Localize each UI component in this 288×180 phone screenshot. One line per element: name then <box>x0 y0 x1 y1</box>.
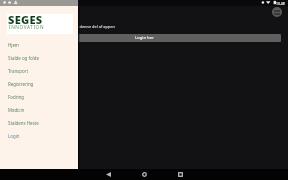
staticText: Registrering <box>8 81 34 87</box>
button[interactable]: Recents <box>170 169 190 180</box>
button[interactable]: Back <box>98 169 118 180</box>
button[interactable]: Menu <box>272 7 282 17</box>
button[interactable]: Login <box>0 129 78 142</box>
staticText: 10.48 <box>276 1 285 6</box>
button[interactable]: Staldens Heste <box>0 116 78 129</box>
button[interactable]: Stalde og folde <box>0 51 78 64</box>
staticText: Transport <box>8 68 28 74</box>
staticText: Fodring <box>8 94 24 100</box>
button[interactable]: Login her <box>7 34 281 42</box>
staticText: Stalde og folde <box>8 55 39 61</box>
button[interactable]: Transport <box>0 64 78 77</box>
staticText: INNOVATION <box>9 24 45 30</box>
staticText: Login <box>8 133 20 139</box>
button[interactable]: Hjem <box>0 38 78 51</box>
staticText: Hjem <box>8 42 19 48</box>
button[interactable]: Fodring <box>0 90 78 103</box>
staticText: Staldens Heste <box>8 120 39 126</box>
staticText: SEGES <box>8 12 43 27</box>
button[interactable]: Home <box>134 169 154 180</box>
staticText: Login her <box>135 35 154 41</box>
staticText: Du skal være logget ind for at kunne se … <box>7 24 115 29</box>
button[interactable]: Registrering <box>0 77 78 90</box>
staticText: Medicin <box>8 107 25 113</box>
button[interactable]: Medicin <box>0 103 78 116</box>
